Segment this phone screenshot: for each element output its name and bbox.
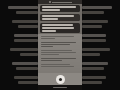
button[interactable] (40, 5, 80, 12)
button[interactable] (40, 23, 80, 33)
button[interactable] (40, 14, 80, 21)
button[interactable]: Stop recording (56, 75, 65, 84)
